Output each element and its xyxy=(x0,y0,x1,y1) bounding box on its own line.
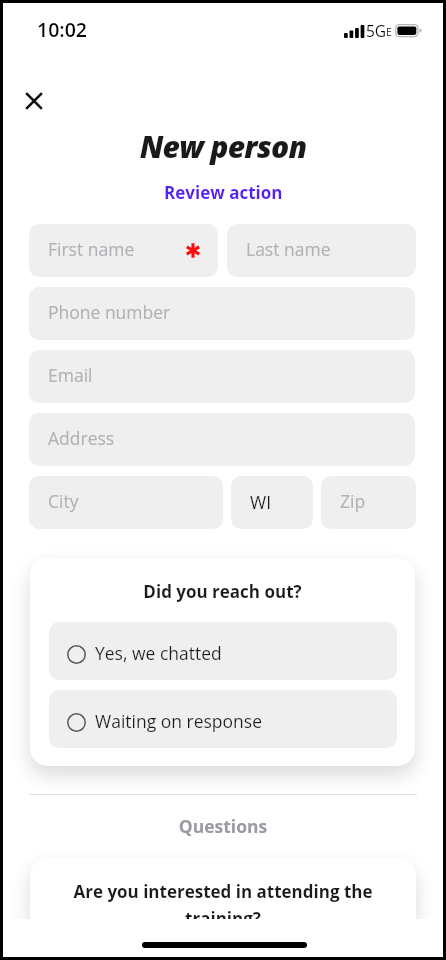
button[interactable]: Phone number xyxy=(29,287,415,340)
staticText: First name xyxy=(48,237,199,261)
staticText: Waiting on response xyxy=(95,709,262,733)
staticText: WI xyxy=(250,490,294,514)
staticText: Zip xyxy=(340,489,397,513)
button[interactable]: Waiting on response xyxy=(49,690,397,748)
staticText: Phone number xyxy=(48,300,396,324)
button[interactable]: First name xyxy=(29,224,218,277)
staticText: E xyxy=(386,25,392,39)
button[interactable]: City xyxy=(29,476,223,529)
button[interactable]: Last name xyxy=(227,224,416,277)
staticText: Last name xyxy=(246,237,397,261)
staticText: City xyxy=(48,489,204,513)
button[interactable]: Zip xyxy=(321,476,416,529)
staticText: 10:02 xyxy=(37,16,87,43)
staticText: 5G xyxy=(366,20,387,41)
button[interactable]: Email xyxy=(29,350,415,403)
staticText: Yes, we chatted xyxy=(95,641,222,665)
staticText: Email xyxy=(48,363,396,387)
button[interactable]: Review action xyxy=(164,181,283,204)
button[interactable]: Address xyxy=(29,413,415,466)
button[interactable]: Close xyxy=(18,85,50,117)
staticText: Questions xyxy=(3,814,443,838)
button[interactable]: WI xyxy=(231,476,313,529)
button[interactable]: Yes, we chatted xyxy=(49,622,397,680)
staticText: New person xyxy=(3,126,443,167)
staticText: Are you interested in attending the trai… xyxy=(49,880,397,919)
staticText: Did you reach out? xyxy=(30,580,415,603)
staticText: Address xyxy=(48,426,396,450)
